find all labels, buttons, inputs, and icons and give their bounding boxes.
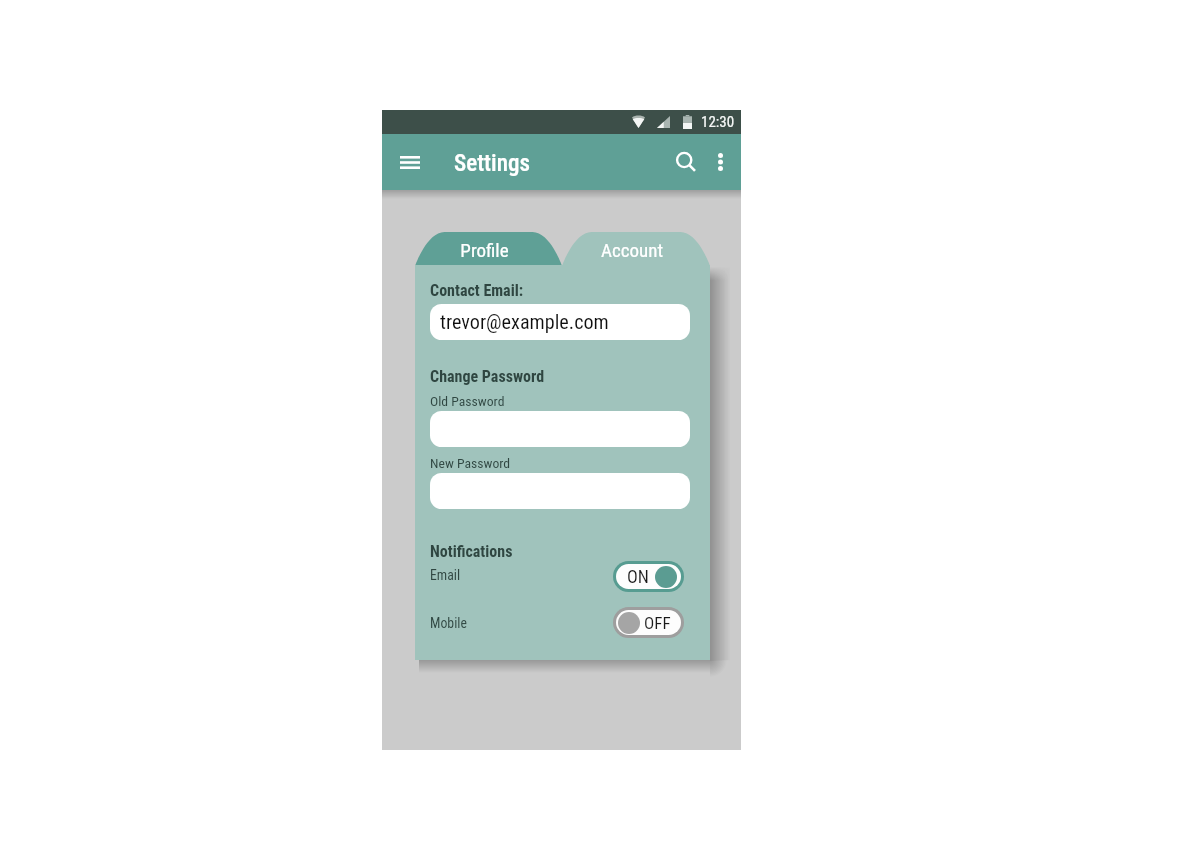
button[interactable]: Open navigation menu [386, 138, 434, 186]
staticText: Account [558, 239, 706, 261]
button[interactable]: Profile [415, 232, 562, 266]
button[interactable]: Mobile notifications off [613, 607, 684, 638]
staticText: trevor@example.com [440, 310, 609, 334]
button[interactable]: Search [662, 138, 710, 186]
button[interactable]: Email notifications on [613, 561, 684, 592]
staticText: Old Password [430, 393, 505, 409]
button[interactable]: More options [696, 138, 744, 186]
staticText: Contact Email: [430, 281, 524, 300]
staticText: New Password [430, 455, 511, 471]
staticText: Email [430, 567, 461, 583]
staticText: Mobile [430, 615, 467, 631]
button[interactable] [430, 411, 690, 447]
button[interactable]: Account [562, 232, 710, 266]
staticText: Profile [411, 239, 558, 261]
button[interactable] [430, 473, 690, 509]
staticText: Notifications [430, 542, 513, 561]
staticText: ON [627, 566, 649, 587]
staticText: 12:30 [701, 113, 735, 131]
staticText: OFF [644, 613, 671, 633]
staticText: Settings [454, 150, 530, 177]
button[interactable]: trevor@example.com [430, 304, 690, 340]
staticText: Change Password [430, 367, 545, 386]
